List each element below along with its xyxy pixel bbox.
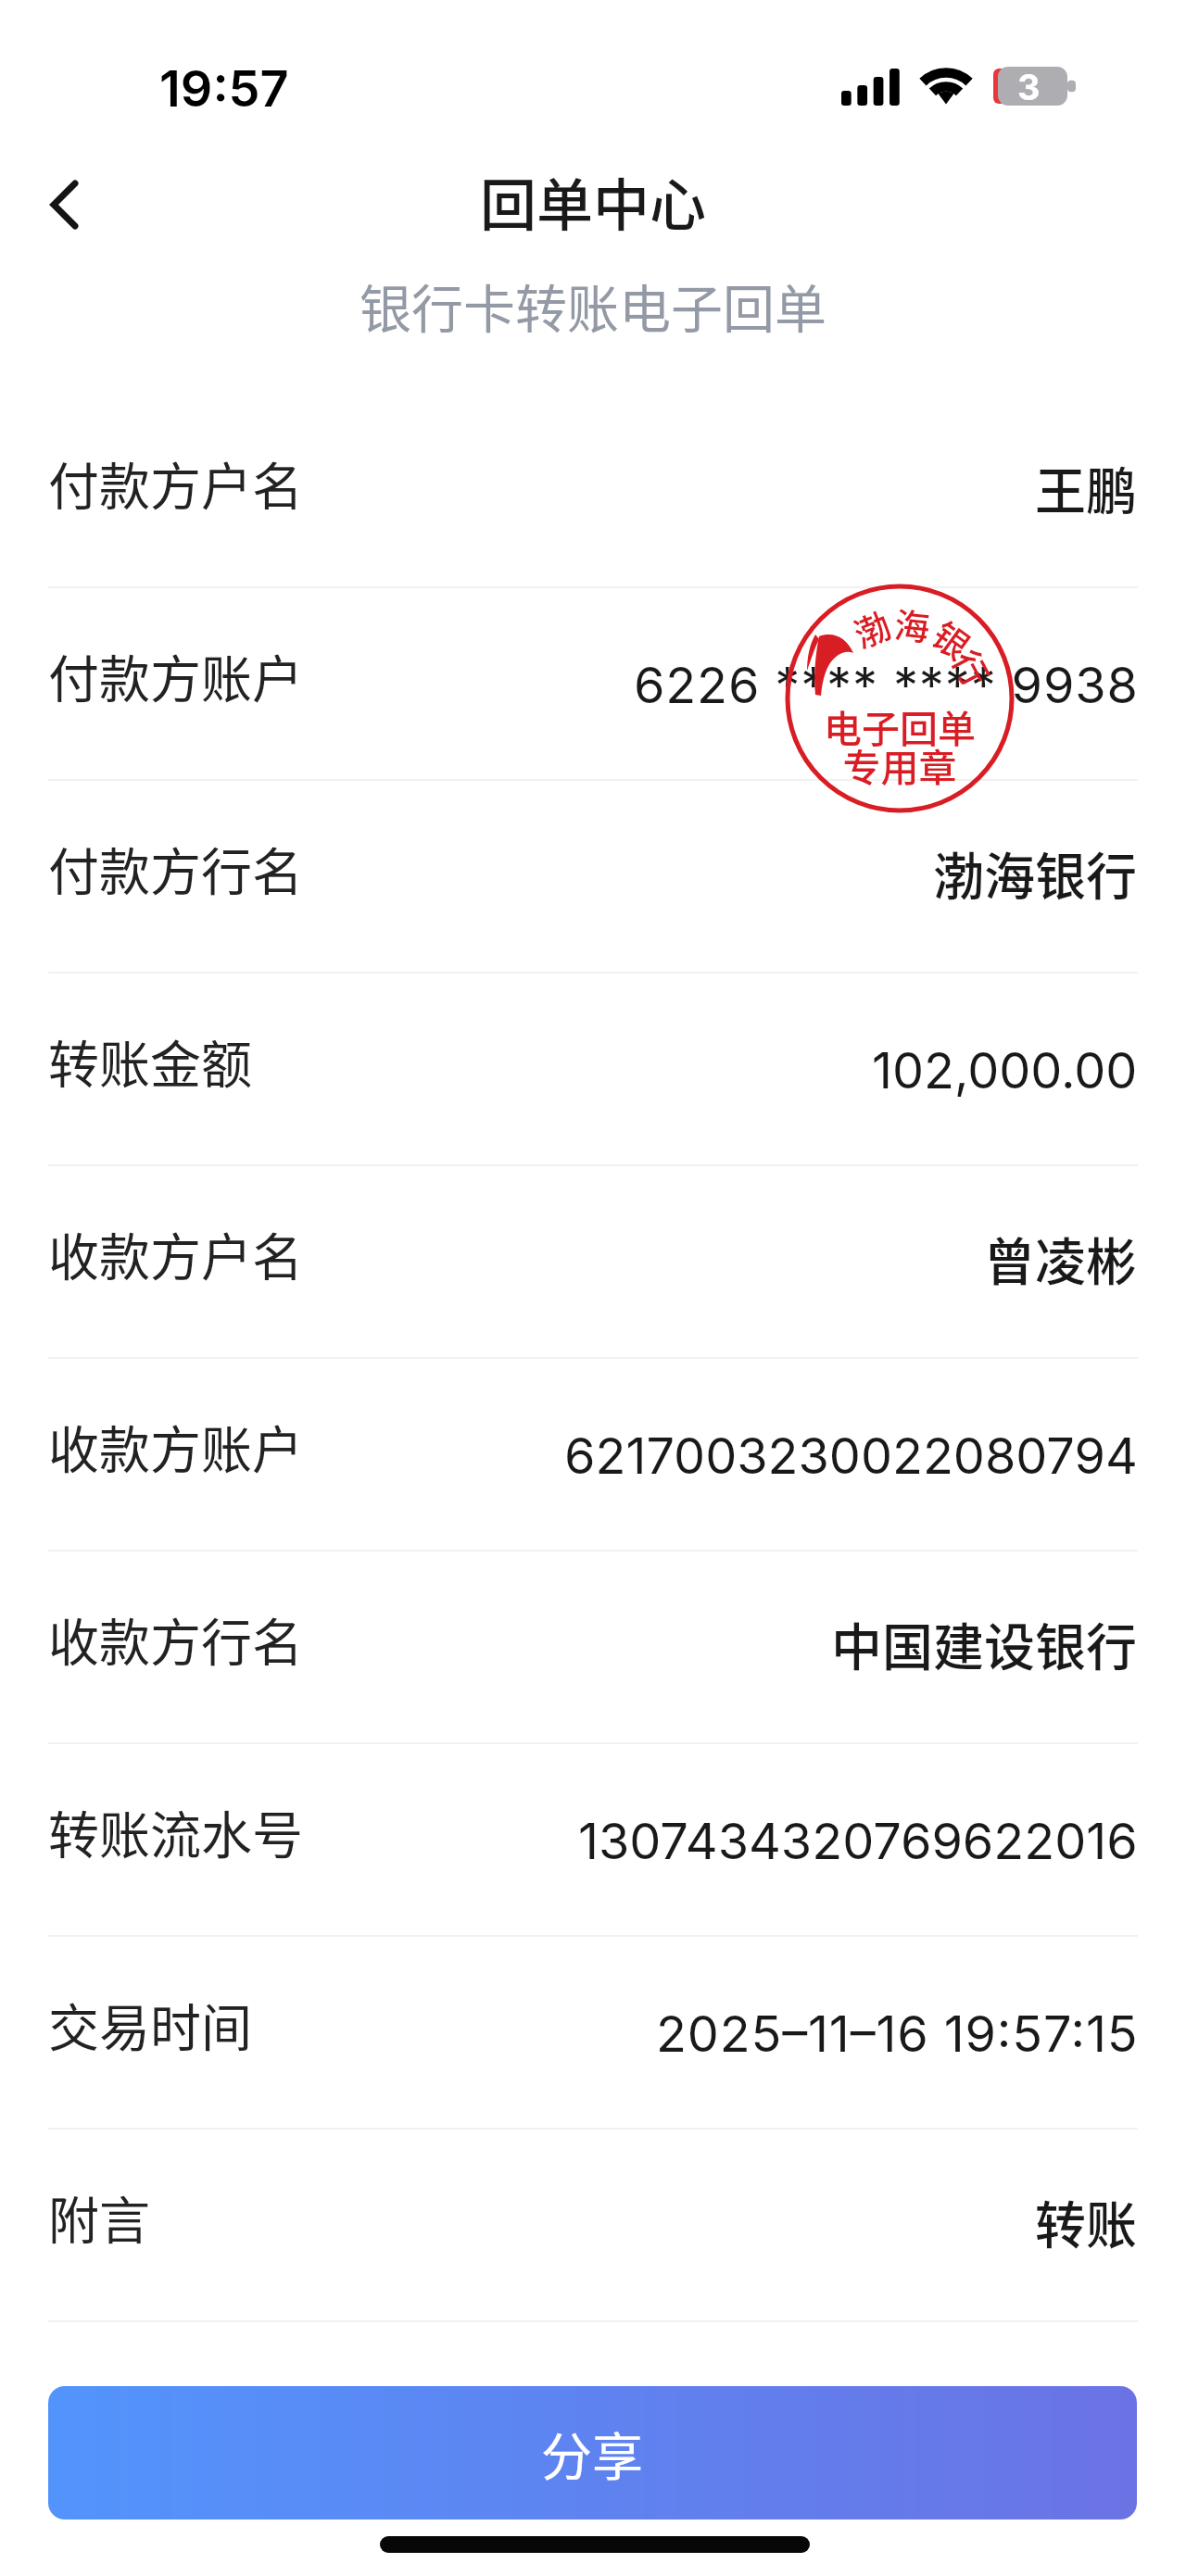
- staticText: 交易时间: [48, 1987, 253, 2061]
- staticText: 渤海银行: [933, 836, 1138, 910]
- staticText: 付款方账户: [48, 638, 304, 712]
- staticText: 银行卡转账电子回单: [360, 268, 826, 343]
- button[interactable]: 付款方户名: [0, 396, 1186, 586]
- button[interactable]: 付款方行名: [0, 781, 1186, 972]
- button[interactable]: 付款方账户: [0, 588, 1186, 779]
- staticText: 收款方账户: [48, 1409, 304, 1483]
- staticText: 6226 **** **** 9938: [634, 655, 1139, 715]
- staticText: 转账金额: [48, 1024, 253, 1098]
- staticText: 中国建设银行: [831, 1606, 1138, 1680]
- button[interactable]: 收款方账户: [0, 1359, 1186, 1550]
- staticText: 6217003230022080794: [564, 1426, 1138, 1486]
- button[interactable]: 收款方行名: [0, 1552, 1186, 1742]
- button[interactable]: 转账金额: [0, 974, 1186, 1164]
- staticText: 回单中心: [480, 160, 707, 242]
- staticText: 转账: [1035, 2184, 1138, 2258]
- staticText: 102,000.00: [872, 1040, 1138, 1100]
- staticText: 付款方户名: [48, 446, 304, 520]
- button[interactable]: 交易时间: [0, 1937, 1186, 2128]
- staticText: 19:57: [159, 58, 289, 119]
- staticText: 分享: [541, 2416, 644, 2490]
- button[interactable]: 收款方户名: [0, 1166, 1186, 1357]
- staticText: 付款方行名: [48, 831, 304, 905]
- staticText: 3: [1017, 66, 1041, 105]
- staticText: 收款方户名: [48, 1216, 304, 1290]
- button[interactable]: 附言: [0, 2130, 1186, 2320]
- staticText: 收款方行名: [48, 1602, 304, 1676]
- staticText: 2025–11–16 19:57:15: [656, 2004, 1139, 2064]
- staticText: 曾凌彬: [984, 1221, 1138, 1295]
- staticText: 1307434320769622016: [578, 1811, 1138, 1871]
- staticText: 附言: [48, 2180, 151, 2254]
- button[interactable]: 转账流水号: [0, 1744, 1186, 1935]
- button[interactable]: 分享: [48, 2386, 1137, 2519]
- button[interactable]: Back: [18, 158, 110, 251]
- staticText: 转账流水号: [48, 1794, 304, 1868]
- staticText: 王鹏: [1035, 450, 1138, 524]
